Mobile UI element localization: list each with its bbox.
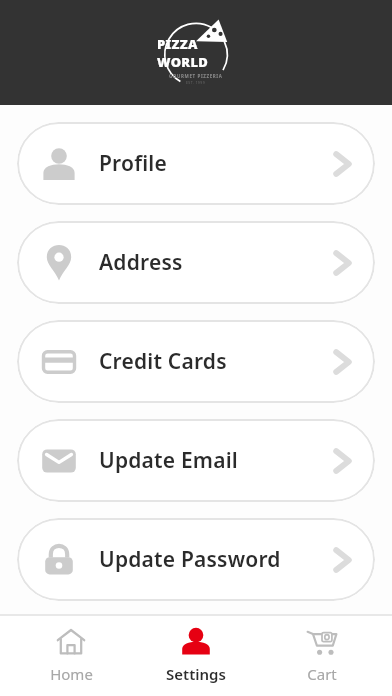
staticText: Credit Cards bbox=[99, 347, 227, 376]
button[interactable]: Update Password bbox=[17, 518, 375, 601]
button[interactable]: Cart bbox=[267, 614, 377, 696]
staticText: EST. 1999 bbox=[186, 80, 206, 85]
staticText: GOURMET PIZZERIA bbox=[169, 73, 223, 79]
button[interactable]: Profile bbox=[17, 122, 375, 205]
staticText: Settings bbox=[166, 664, 226, 684]
button[interactable]: Credit Cards bbox=[17, 320, 375, 403]
staticText: Cart bbox=[307, 664, 337, 684]
staticText: PIZZA WORLD bbox=[157, 35, 235, 71]
button[interactable]: Update Email bbox=[17, 419, 375, 502]
staticText: Address bbox=[99, 248, 183, 277]
staticText: Profile bbox=[99, 149, 167, 178]
staticText: Update Email bbox=[99, 446, 238, 475]
other: Pizza World logo bbox=[157, 14, 235, 92]
button[interactable]: Home bbox=[16, 614, 126, 696]
staticText: Home bbox=[50, 664, 93, 684]
button[interactable]: Settings bbox=[141, 614, 251, 696]
staticText: Update Password bbox=[99, 545, 281, 574]
button[interactable]: Address bbox=[17, 221, 375, 304]
